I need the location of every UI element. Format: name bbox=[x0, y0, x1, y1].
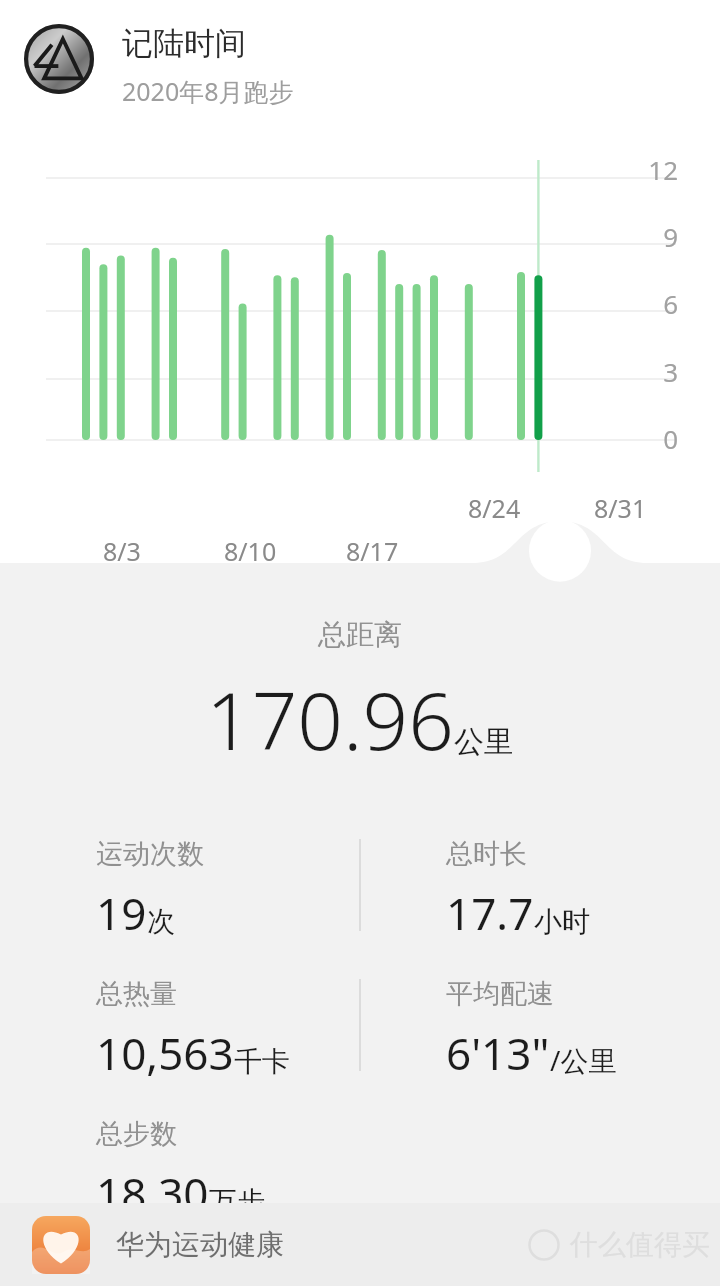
staticText: 公里 bbox=[454, 723, 514, 761]
staticText: 小时 bbox=[534, 904, 590, 939]
staticText: 10,563 bbox=[96, 1023, 234, 1083]
staticText: 12 bbox=[0, 152, 678, 187]
staticText: 华为运动健康 bbox=[116, 1227, 284, 1262]
staticText: 6 bbox=[0, 286, 678, 321]
button[interactable]: Profile avatar bbox=[24, 24, 94, 94]
button[interactable]: 总时长 bbox=[446, 837, 720, 961]
staticText: 9 bbox=[0, 219, 678, 254]
staticText: /公里 bbox=[550, 1041, 617, 1079]
staticText: 千卡 bbox=[234, 1044, 290, 1079]
staticText: 3 bbox=[0, 354, 678, 389]
staticText: 记陆时间 bbox=[122, 24, 246, 63]
button[interactable]: 总步数 bbox=[96, 1117, 360, 1241]
staticText: 19 bbox=[96, 883, 147, 943]
staticText: 总步数 bbox=[96, 1117, 177, 1151]
staticText: 总热量 bbox=[96, 977, 177, 1011]
staticText: 18.30 bbox=[96, 1163, 209, 1223]
button[interactable]: 总热量 bbox=[96, 977, 360, 1101]
staticText: 6'13" bbox=[446, 1023, 550, 1083]
button[interactable]: Huawei Health app bbox=[0, 1203, 720, 1286]
staticText: 8/31 bbox=[594, 491, 647, 525]
staticText: 0 bbox=[0, 421, 678, 456]
staticText: 运动次数 bbox=[96, 837, 204, 871]
other: Huawei Health app bbox=[32, 1216, 90, 1274]
staticText: 2020年8月跑步 bbox=[122, 74, 294, 108]
staticText: 8/3 bbox=[103, 534, 141, 568]
staticText: 8/17 bbox=[346, 534, 399, 568]
staticText: 8/24 bbox=[468, 491, 521, 525]
staticText: 什么值得买 bbox=[570, 1227, 710, 1262]
button[interactable]: 平均配速 bbox=[446, 977, 720, 1101]
staticText: 次 bbox=[147, 904, 175, 939]
staticText: 平均配速 bbox=[446, 977, 554, 1011]
staticText: 8/10 bbox=[224, 534, 277, 568]
staticText: 总距离 bbox=[0, 617, 720, 652]
staticText: 万步 bbox=[209, 1184, 265, 1219]
staticText: 17.7 bbox=[446, 883, 534, 943]
button[interactable]: 运动次数 bbox=[96, 837, 360, 961]
staticText: 总时长 bbox=[446, 837, 527, 871]
staticText: 170.96 bbox=[206, 664, 454, 773]
